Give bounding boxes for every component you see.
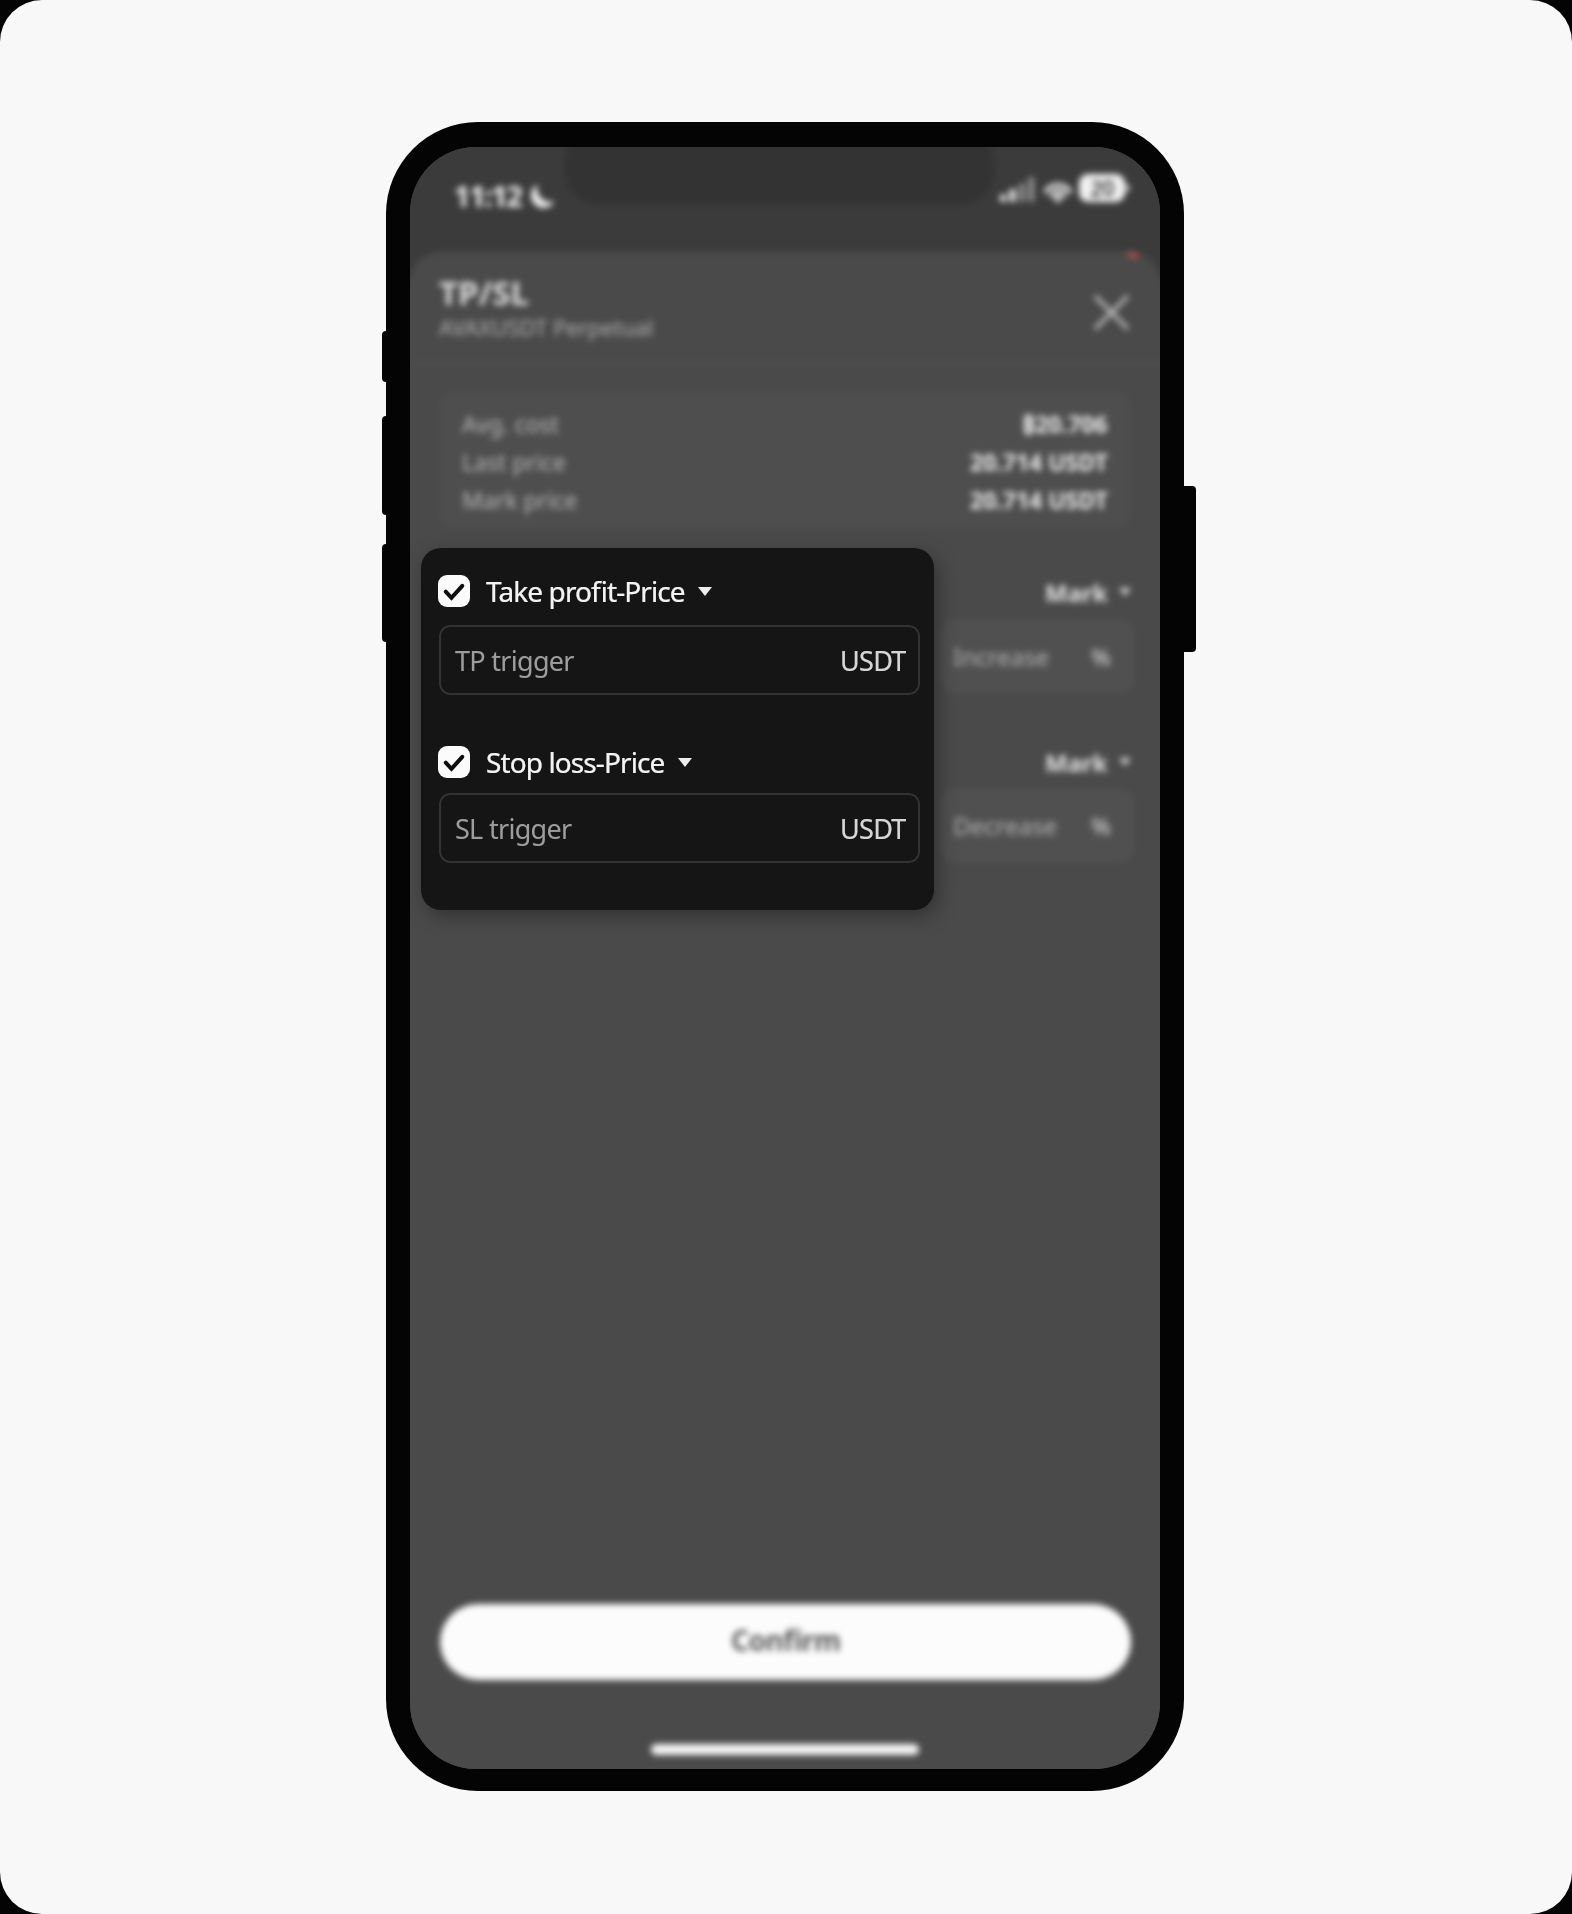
staticText: TP/SL	[439, 270, 529, 315]
staticText: USDT	[840, 642, 906, 679]
staticText: Confirm	[731, 1621, 841, 1659]
other: Stop loss-Price enabled	[438, 746, 470, 778]
staticText: Mark price	[462, 484, 578, 515]
button[interactable]: Decrease	[942, 790, 1133, 861]
button[interactable]: Mark	[1010, 574, 1131, 610]
staticText: 20.714 USDT	[970, 484, 1108, 515]
button[interactable]: Mark	[1010, 744, 1131, 780]
staticText: TP trigger	[455, 642, 574, 679]
staticText: Mark	[1045, 576, 1108, 609]
staticText: %	[1091, 809, 1111, 842]
staticText: USDT	[840, 810, 906, 847]
staticText: %	[1091, 640, 1111, 673]
button[interactable]: SL trigger	[439, 793, 920, 863]
other: Take profit-Price enabled	[438, 575, 470, 607]
button[interactable]: Increase	[942, 621, 1133, 692]
staticText: SL trigger	[455, 810, 572, 847]
staticText: Mark	[1045, 746, 1108, 779]
staticText: Avg. cost	[462, 408, 559, 439]
staticText: Take profit-Price	[486, 572, 685, 610]
button[interactable]: Take profit-Price enabled	[438, 565, 712, 617]
staticText: AVAXUSDT Perpetual	[439, 312, 654, 342]
staticText: Increase	[953, 640, 1049, 673]
staticText: 11:12	[454, 176, 522, 215]
button[interactable]: Confirm	[440, 1604, 1131, 1680]
button[interactable]: Close	[1082, 283, 1140, 341]
staticText: Stop loss-Price	[486, 743, 665, 781]
button[interactable]: Stop loss-Price enabled	[438, 736, 692, 788]
staticText: Decrease	[953, 809, 1058, 842]
staticText: 20.714 USDT	[970, 446, 1108, 477]
staticText: Last price	[462, 446, 566, 477]
staticText: ₿20.706	[1022, 408, 1108, 439]
button[interactable]: TP trigger	[439, 625, 920, 695]
